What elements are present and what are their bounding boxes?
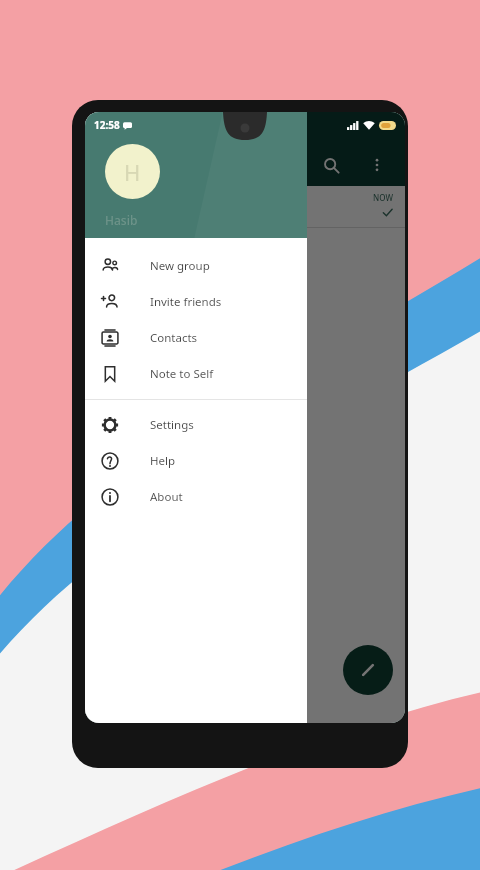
staticText: About [150,489,183,505]
staticText: Note to Self [150,366,214,382]
button[interactable]: About [85,479,307,515]
button[interactable]: Settings [85,407,307,443]
staticText: Hasib [105,212,138,228]
button[interactable]: Invite friends [85,284,307,320]
staticText: Contacts [150,330,198,346]
button[interactable]: Compose new message [343,645,393,695]
staticText: H [124,157,141,187]
button[interactable]: Contacts [85,320,307,356]
button[interactable]: Note to Self [85,356,307,392]
staticText: 12:58 [94,118,120,132]
button[interactable]: More options [357,145,397,185]
staticText: Invite friends [150,294,222,310]
staticText: Help [150,453,176,469]
button[interactable]: Help [85,443,307,479]
staticText: New group [150,258,210,274]
button[interactable]: Search [311,145,351,185]
button[interactable]: New group [85,248,307,284]
staticText: NOW [373,192,393,203]
staticText: Settings [150,417,194,433]
